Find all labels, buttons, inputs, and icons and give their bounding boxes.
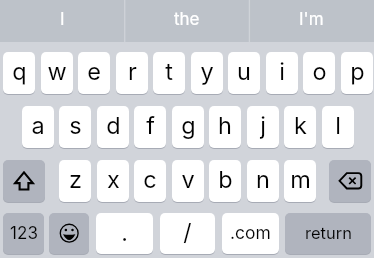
staticText: i [279,57,285,85]
button[interactable]: z [59,160,91,202]
staticText: n [256,165,270,193]
staticText: s [69,111,82,139]
staticText: t [165,57,173,85]
button[interactable]: d [97,106,129,148]
button[interactable]: t [153,52,185,94]
button[interactable]: Shift [3,160,45,202]
button[interactable]: v [172,160,204,202]
staticText: a [31,111,45,139]
staticText: j [260,111,266,139]
button[interactable]: s [59,106,91,148]
staticText: e [87,57,101,85]
button[interactable]: Emoji keyboard [49,213,89,254]
button[interactable]: Backspace [329,160,371,202]
button[interactable]: I [0,0,124,42]
staticText: x [107,165,120,193]
staticText: q [12,57,27,85]
button[interactable]: b [209,160,241,202]
staticText: the [174,9,200,30]
button[interactable]: .com [222,213,279,254]
button[interactable]: 123 [3,213,44,254]
staticText: c [143,165,157,193]
staticText: f [146,111,155,139]
button[interactable]: . [96,213,153,254]
button[interactable]: p [341,52,373,94]
staticText: 123 [10,223,38,244]
staticText: I [60,9,65,30]
staticText: p [350,57,365,85]
staticText: k [294,111,307,139]
button[interactable]: j [247,106,279,148]
button[interactable]: o [303,52,335,94]
staticText: u [237,57,251,85]
staticText: I'm [299,9,324,30]
button[interactable]: f [134,106,166,148]
staticText: g [181,111,196,139]
staticText: v [181,165,195,193]
button[interactable]: / [160,213,215,254]
button[interactable]: q [3,52,35,94]
staticText: .com [230,222,271,243]
button[interactable]: return [285,213,371,254]
staticText: . [121,219,128,247]
button[interactable]: a [22,106,54,148]
button[interactable]: e [78,52,110,94]
staticText: d [106,111,121,139]
staticText: b [218,165,233,193]
button[interactable]: y [191,52,223,94]
button[interactable]: the [124,0,249,42]
button[interactable]: x [97,160,129,202]
staticText: m [290,165,311,193]
staticText: z [69,165,82,193]
button[interactable]: w [41,52,73,94]
staticText: r [128,57,137,85]
button[interactable]: h [209,106,241,148]
button[interactable]: I'm [249,0,374,42]
button[interactable]: n [247,160,279,202]
staticText: return [305,223,352,243]
button[interactable]: k [284,106,316,148]
button[interactable]: u [228,52,260,94]
button[interactable]: c [134,160,166,202]
button[interactable]: i [266,52,298,94]
staticText: / [183,219,192,247]
button[interactable]: l [322,106,354,148]
button[interactable]: g [172,106,204,148]
staticText: y [200,57,214,85]
staticText: h [218,111,232,139]
staticText: w [47,57,67,85]
staticText: l [335,111,341,139]
button[interactable]: m [284,160,316,202]
button[interactable]: r [116,52,148,94]
staticText: o [312,57,327,85]
